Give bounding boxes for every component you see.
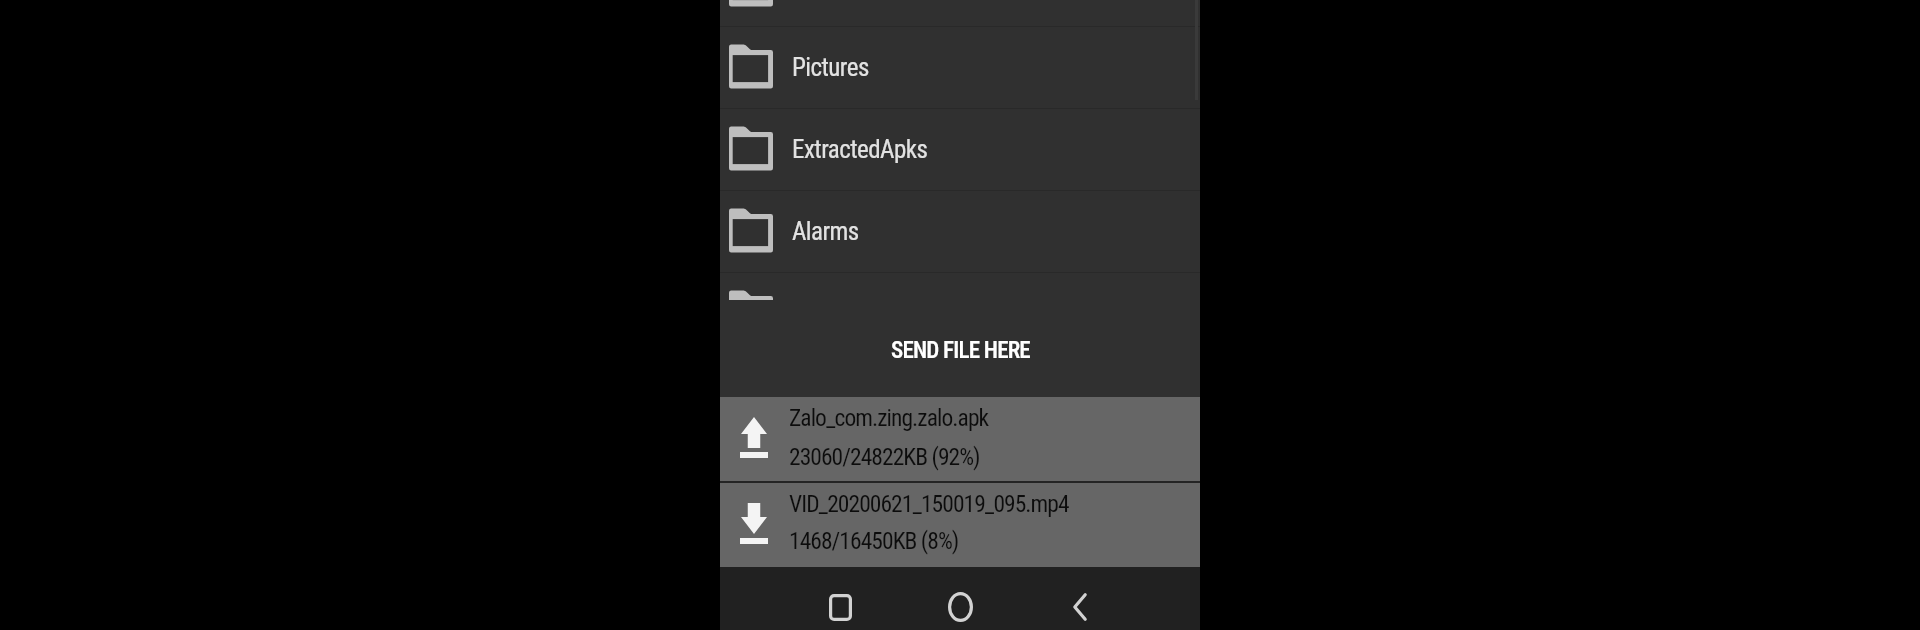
button[interactable]: Alarms bbox=[720, 191, 1200, 272]
staticText: Pictures bbox=[792, 53, 869, 82]
staticText: Alarms bbox=[792, 217, 859, 246]
button[interactable]: Zalo_com.zing.zalo.apk bbox=[720, 397, 1200, 481]
button[interactable]: SEND FILE HERE bbox=[720, 300, 1200, 397]
button[interactable]: Back bbox=[1050, 589, 1110, 625]
button[interactable]: ExtractedApks bbox=[720, 109, 1200, 190]
button[interactable]: Pictures bbox=[720, 27, 1200, 108]
staticText: Zalo_com.zing.zalo.apk bbox=[789, 404, 989, 432]
button[interactable]: Android bbox=[720, 273, 1200, 300]
staticText: SEND FILE HERE bbox=[891, 337, 1030, 364]
button[interactable]: Recent apps bbox=[810, 589, 870, 625]
button[interactable]: Downloads bbox=[720, 0, 1200, 26]
staticText: 23060/24822KB (92%) bbox=[789, 443, 980, 471]
staticText: VID_20200621_150019_095.mp4 bbox=[789, 490, 1069, 518]
staticText: 1468/16450KB (8%) bbox=[789, 527, 959, 555]
button[interactable]: Home bbox=[930, 589, 990, 625]
staticText: ExtractedApks bbox=[792, 135, 928, 164]
button[interactable]: VID_20200621_150019_095.mp4 bbox=[720, 483, 1200, 567]
